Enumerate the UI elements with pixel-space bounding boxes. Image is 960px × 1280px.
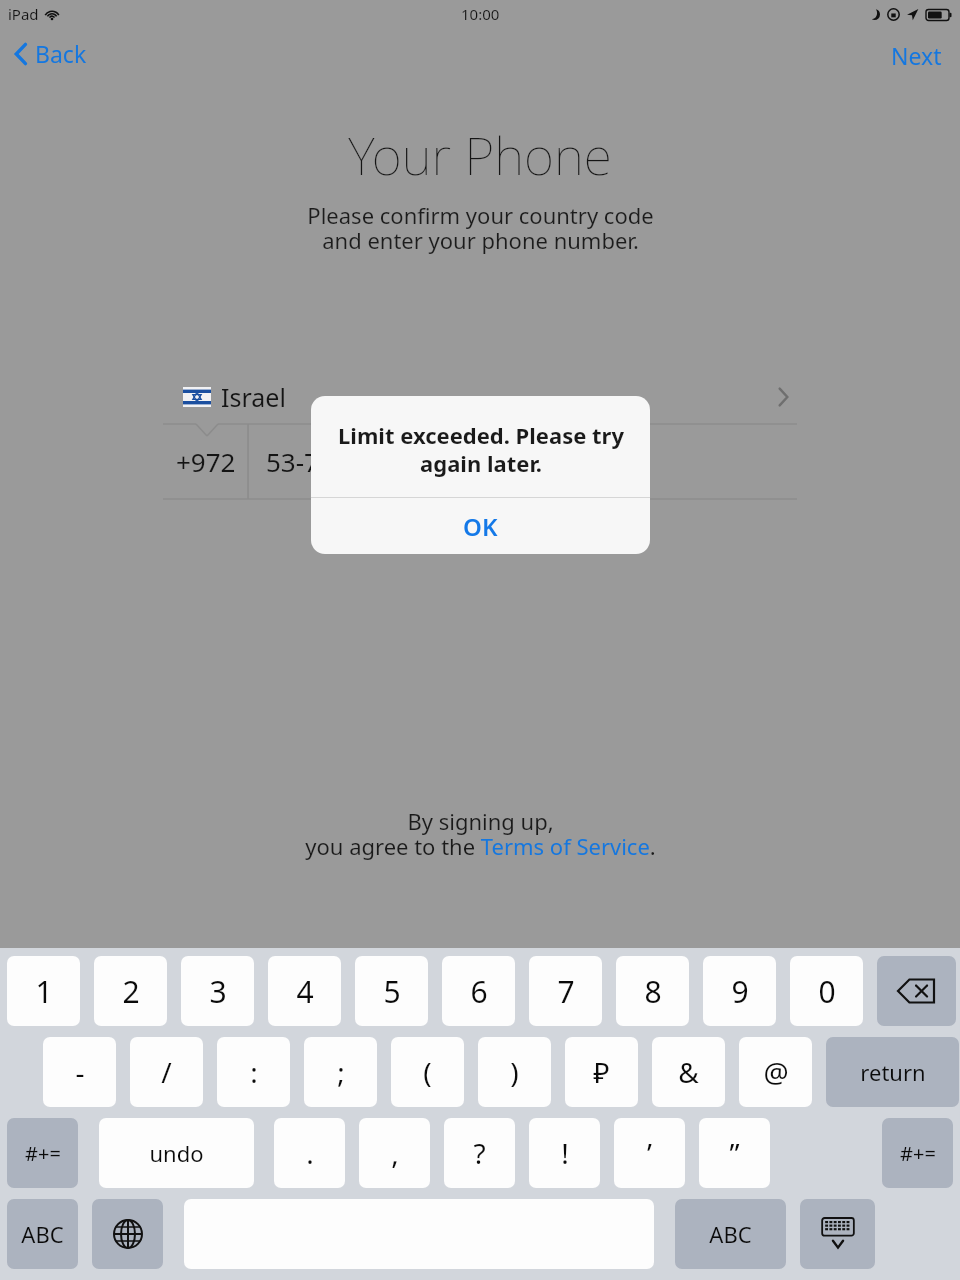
button[interactable]: ₽	[565, 1037, 638, 1107]
button[interactable]: ABC	[675, 1199, 786, 1269]
staticText: 9	[731, 971, 749, 1012]
staticText: (	[423, 1053, 432, 1091]
button[interactable]: Hide keyboard	[800, 1199, 875, 1269]
button[interactable]: 4	[268, 956, 341, 1026]
button[interactable]: return	[826, 1037, 959, 1107]
staticText: undo	[149, 1138, 204, 1168]
staticText: ”	[729, 1134, 740, 1172]
staticText: Your Phone	[348, 119, 612, 190]
staticText: /	[161, 1053, 172, 1091]
button[interactable]: #+=	[882, 1118, 953, 1188]
button[interactable]: 8	[616, 956, 689, 1026]
button[interactable]: By signing up, you agree to the Terms of…	[305, 806, 656, 861]
staticText: Next	[891, 40, 942, 71]
button[interactable]: -	[43, 1037, 116, 1107]
button[interactable]: )	[478, 1037, 551, 1107]
staticText: iPad	[8, 4, 39, 24]
staticText: &	[678, 1053, 699, 1091]
button[interactable]: Change keyboard language	[92, 1199, 163, 1269]
staticText: 5	[383, 971, 401, 1012]
staticText: #+=	[900, 1140, 936, 1167]
button[interactable]: 1	[7, 956, 80, 1026]
staticText: 53-7	[266, 444, 319, 479]
staticText: 10:00	[461, 4, 500, 24]
staticText: !	[561, 1134, 569, 1172]
staticText: -	[75, 1053, 85, 1091]
button[interactable]: 3	[181, 956, 254, 1026]
button[interactable]: Israel	[163, 370, 797, 424]
button[interactable]: 0	[790, 956, 863, 1026]
button[interactable]: (	[391, 1037, 464, 1107]
button[interactable]: @	[739, 1037, 812, 1107]
staticText: ,	[391, 1134, 399, 1172]
staticText: ’	[647, 1134, 652, 1172]
staticText: OK	[463, 510, 498, 543]
staticText: ABC	[709, 1219, 752, 1249]
button[interactable]: .	[274, 1118, 345, 1188]
button[interactable]: /	[130, 1037, 203, 1107]
staticText: 2	[122, 971, 140, 1012]
staticText: 0	[818, 971, 836, 1012]
button[interactable]: &	[652, 1037, 725, 1107]
staticText: 4	[296, 971, 314, 1012]
staticText: ₽	[593, 1053, 610, 1091]
staticText: Israel	[221, 380, 286, 414]
staticText: Back	[35, 38, 87, 69]
staticText: )	[510, 1053, 519, 1091]
staticText: 6	[470, 971, 488, 1012]
button[interactable]: ?	[444, 1118, 515, 1188]
button[interactable]: 7	[529, 956, 602, 1026]
button[interactable]: undo	[99, 1118, 254, 1188]
staticText: ABC	[21, 1219, 64, 1249]
staticText: 8	[644, 971, 662, 1012]
button[interactable]: Back	[10, 34, 91, 73]
button[interactable]: OK	[311, 498, 650, 554]
staticText: .	[306, 1134, 314, 1172]
button[interactable]: 9	[703, 956, 776, 1026]
button[interactable]: ABC	[7, 1199, 78, 1269]
staticText: ?	[473, 1134, 486, 1172]
button[interactable]: ’	[614, 1118, 685, 1188]
button[interactable]: #+=	[7, 1118, 78, 1188]
button[interactable]: 6	[442, 956, 515, 1026]
staticText: +972	[176, 444, 236, 479]
staticText: By signing up, you agree to the Terms of…	[305, 806, 656, 861]
button[interactable]: 53-7	[248, 424, 548, 499]
staticText: Limit exceeded. Please try again later.	[338, 420, 624, 478]
button[interactable]: ;	[304, 1037, 377, 1107]
button[interactable]: Backspace	[877, 956, 956, 1026]
button[interactable]: +972	[163, 424, 248, 499]
staticText: @	[763, 1053, 789, 1091]
button[interactable]: !	[529, 1118, 600, 1188]
button[interactable]: 2	[94, 956, 167, 1026]
staticText: 3	[209, 971, 227, 1012]
staticText: ;	[337, 1053, 345, 1091]
button[interactable]: Next	[887, 36, 946, 75]
button[interactable]: ”	[699, 1118, 770, 1188]
button[interactable]: ,	[359, 1118, 430, 1188]
staticText: return	[860, 1057, 926, 1087]
staticText: 7	[557, 971, 575, 1012]
staticText: 1	[35, 971, 53, 1012]
staticText: #+=	[25, 1140, 61, 1167]
button[interactable]: :	[217, 1037, 290, 1107]
button[interactable]: 5	[355, 956, 428, 1026]
staticText: :	[250, 1053, 258, 1091]
staticText: Please confirm your country code and ent…	[307, 200, 654, 256]
